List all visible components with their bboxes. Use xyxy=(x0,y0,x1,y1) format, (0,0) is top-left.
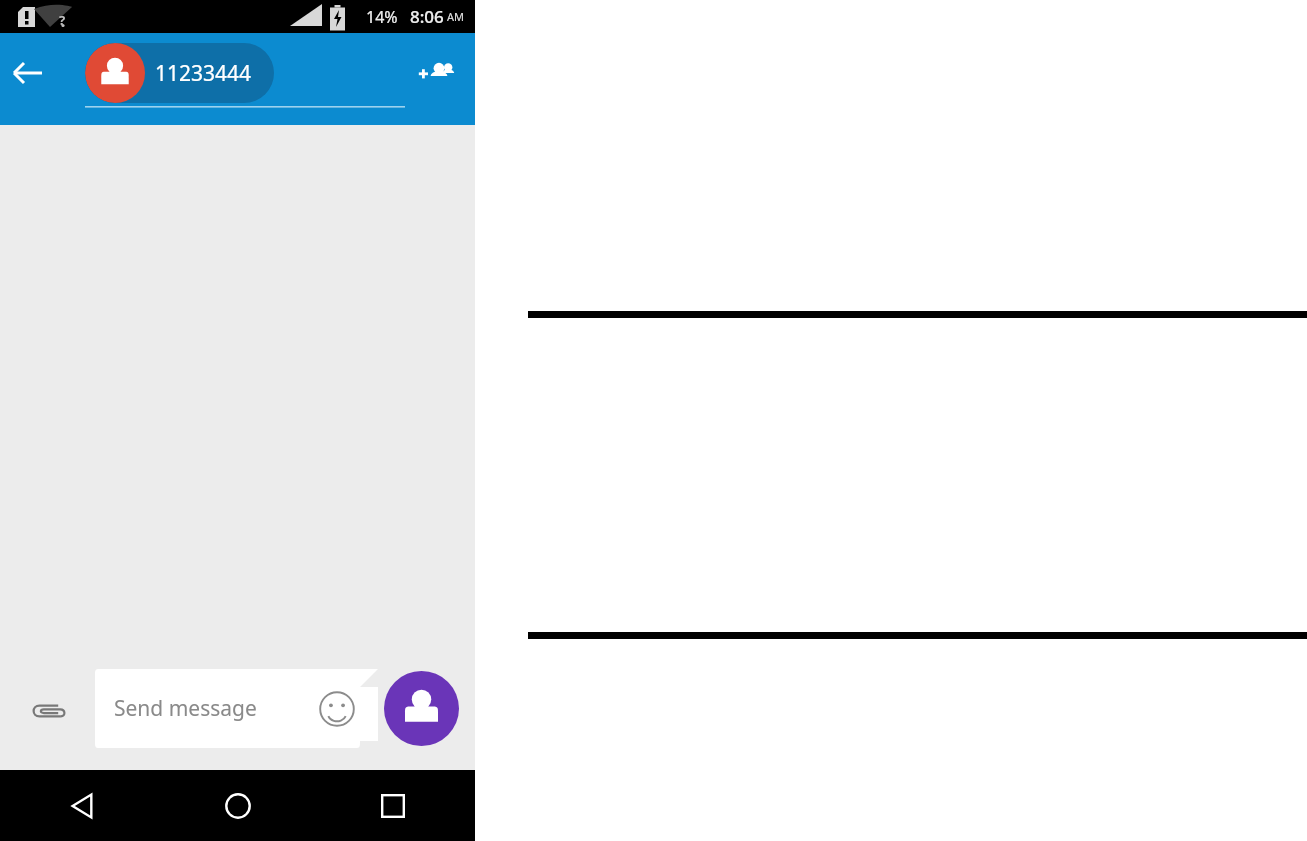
button[interactable]: Add people xyxy=(409,45,465,101)
button[interactable]: Send xyxy=(384,671,459,746)
button[interactable]: Home xyxy=(210,778,266,834)
button[interactable]: Recents xyxy=(365,778,421,834)
staticText: 11233444 xyxy=(155,59,252,88)
button[interactable]: Back xyxy=(55,778,111,834)
button[interactable]: Emoji xyxy=(319,691,355,727)
button[interactable]: Back xyxy=(0,45,56,101)
button[interactable]: 11233444 xyxy=(85,43,274,103)
staticText: 8:06 xyxy=(410,5,444,28)
button[interactable]: Attach xyxy=(22,685,74,737)
staticText: AM xyxy=(447,9,465,24)
staticText: 14% xyxy=(366,6,398,28)
staticText: ? xyxy=(59,11,66,29)
button[interactable]: Send message xyxy=(95,669,378,748)
staticText: Send message xyxy=(114,694,257,723)
